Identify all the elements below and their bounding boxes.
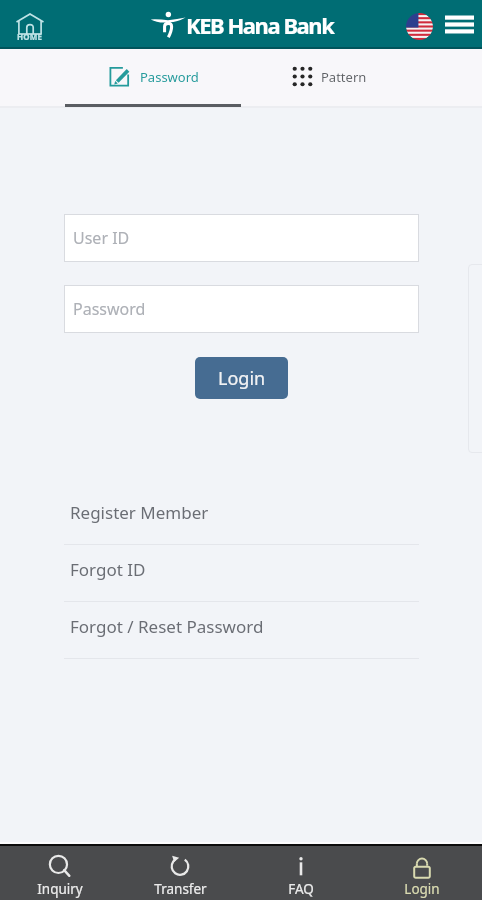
staticText: Login — [404, 880, 440, 898]
staticText: KEB Hana Bank — [186, 10, 334, 40]
staticText: Forgot ID — [70, 558, 146, 581]
staticText: Pattern — [321, 68, 367, 86]
staticText: Forgot / Reset Password — [70, 615, 264, 638]
staticText: Register Member — [70, 501, 209, 524]
button[interactable]: Menu — [440, 6, 478, 44]
button[interactable]: Forgot ID — [0, 545, 482, 601]
button[interactable]: Home — [9, 4, 51, 46]
button[interactable]: Password — [65, 49, 241, 106]
staticText: Password — [140, 68, 199, 86]
button[interactable]: Transfer — [120, 846, 240, 900]
staticText: Password — [73, 298, 146, 320]
button[interactable]: FAQ — [240, 846, 361, 900]
button[interactable]: Pattern — [241, 49, 417, 106]
staticText: Login — [218, 366, 266, 391]
button[interactable]: Change language — [402, 8, 436, 42]
staticText: FAQ — [288, 880, 314, 898]
button[interactable]: Login — [361, 846, 482, 900]
staticText: Inquiry — [37, 880, 83, 898]
button[interactable]: Register Member — [0, 488, 482, 544]
button[interactable]: User ID — [64, 214, 419, 262]
button[interactable]: Inquiry — [0, 846, 120, 900]
button[interactable]: Password — [64, 285, 419, 333]
staticText: User ID — [73, 227, 130, 249]
staticText: Transfer — [154, 880, 207, 898]
button[interactable]: Login — [195, 357, 288, 399]
staticText: HOME — [17, 31, 43, 42]
button[interactable]: Forgot / Reset Password — [0, 602, 482, 658]
